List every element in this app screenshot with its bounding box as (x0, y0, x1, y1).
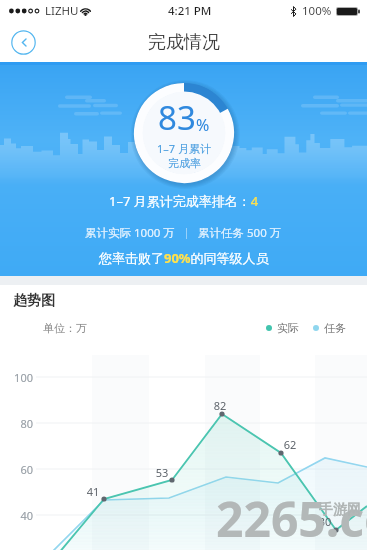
staticText: 完成率 (168, 156, 201, 170)
staticText: 60 (11, 462, 33, 477)
staticText: 手游网 (319, 501, 361, 519)
staticText: 82 (204, 398, 236, 413)
staticText: 30 (309, 514, 341, 529)
staticText: 完成情况 (148, 31, 220, 54)
staticText: 100 (11, 370, 33, 385)
staticText: 累计任务 500 万 (198, 225, 282, 241)
staticText: 趋势图 (13, 292, 55, 310)
staticText: 1–7 月累计完成率排名：4 (109, 192, 259, 210)
staticText: % (196, 114, 210, 136)
staticText: 100% (302, 3, 332, 19)
staticText: 任务 (324, 321, 346, 335)
button[interactable]: Back (11, 30, 36, 55)
staticText: 实际 (277, 321, 299, 335)
staticText: 62 (274, 437, 306, 452)
staticText: 83 (158, 95, 196, 140)
staticText: 2265.com (216, 486, 367, 550)
staticText: 41 (77, 484, 109, 499)
staticText: 1–7 月累计 (157, 141, 211, 156)
staticText: 80 (11, 416, 33, 431)
staticText: 您率击败了90%的同等级人员 (99, 249, 269, 267)
staticText: 累计实际 1000 万 (85, 225, 175, 241)
staticText: LIZHU (45, 3, 79, 19)
staticText: 40 (11, 508, 33, 523)
staticText: 4:21 PM (168, 3, 212, 19)
staticText: 单位：万 (43, 321, 87, 335)
staticText: 53 (146, 465, 178, 480)
